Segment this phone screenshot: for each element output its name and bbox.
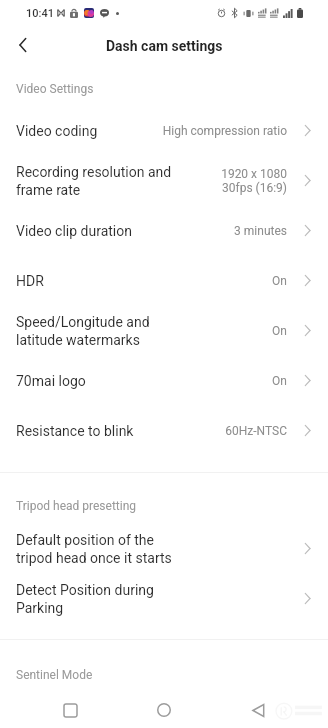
staticText: 1920 x 1080 30fps (16:9) (221, 167, 287, 195)
staticText: 70mai logo (16, 373, 184, 389)
staticText: Sentinel Mode (16, 668, 93, 682)
staticText: 3 minutes (234, 224, 287, 238)
button[interactable]: Back (236, 692, 280, 728)
staticText: 60Hz-NTSC (225, 424, 287, 438)
staticText: Recording resolution and frame rate (16, 164, 184, 199)
staticText: On (272, 274, 287, 288)
button[interactable]: Resistance to blink (0, 406, 328, 456)
button[interactable]: Recent apps (48, 692, 92, 728)
staticText: Resistance to blink (16, 423, 184, 439)
button[interactable]: Recording resolution and frame rate (0, 156, 328, 206)
button[interactable]: Video coding (0, 106, 328, 156)
staticText: Default position of the tripod head once… (16, 532, 184, 567)
staticText: 10:41 (26, 7, 54, 20)
staticText: Detect Position during Parking (16, 582, 184, 617)
button[interactable]: Detect Position during Parking (0, 574, 328, 624)
staticText: Video Settings (16, 82, 94, 96)
staticText: High compression ratio (162, 124, 287, 138)
button[interactable]: HDR (0, 256, 328, 306)
button[interactable]: 70mai logo (0, 356, 328, 406)
staticText: Speed/Longitude and latitude watermarks (16, 314, 184, 349)
staticText: On (272, 374, 287, 388)
button[interactable]: Back (0, 24, 44, 68)
staticText: Video clip duration (16, 223, 184, 239)
staticText: Dash cam settings (106, 38, 223, 54)
staticText: On (272, 324, 287, 338)
button[interactable]: Speed/Longitude and latitude watermarks (0, 306, 328, 356)
staticText: HDR (16, 273, 184, 289)
staticText: Tripod head presetting (16, 499, 137, 513)
button[interactable]: Video clip duration (0, 206, 328, 256)
button[interactable]: Default position of the tripod head once… (0, 524, 328, 574)
button[interactable]: Home (142, 692, 186, 728)
staticText: Video coding (16, 123, 184, 139)
